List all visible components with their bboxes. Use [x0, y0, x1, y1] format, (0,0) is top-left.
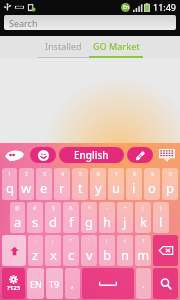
staticText: 8 — [133, 171, 136, 178]
button[interactable]: 1 — [2, 168, 17, 200]
button[interactable]: @ — [10, 202, 25, 233]
button[interactable]: Theme — [127, 147, 153, 163]
button[interactable]: ; — [45, 235, 61, 266]
staticText: x — [50, 246, 57, 264]
button[interactable]: 6 — [90, 168, 106, 200]
button[interactable]: # — [27, 202, 43, 233]
button[interactable]: * — [81, 202, 97, 233]
staticText: w — [21, 179, 32, 197]
staticText: 11:49 — [153, 1, 177, 13]
staticText: q — [6, 179, 14, 197]
button[interactable]: T9 — [46, 268, 63, 299]
button[interactable]: . — [136, 268, 151, 299]
staticText: s — [32, 213, 39, 231]
staticText: t — [78, 179, 83, 197]
staticText: u — [112, 179, 121, 197]
button[interactable]: 2 — [19, 168, 34, 200]
staticText: Search — [9, 17, 38, 29]
button[interactable]: - — [99, 202, 115, 233]
staticText: z — [32, 246, 39, 264]
staticText: En — [123, 4, 129, 11]
other: Backspace — [153, 235, 178, 266]
staticText: $ — [52, 205, 55, 212]
staticText: 5 — [79, 171, 82, 178]
button[interactable]: GO Market — [89, 36, 144, 56]
button[interactable]: Shift — [2, 235, 26, 266]
staticText: * — [88, 205, 91, 212]
button[interactable]: 7 — [108, 168, 124, 200]
staticText: - — [106, 205, 108, 212]
button[interactable]: : — [28, 235, 43, 266]
button[interactable]: ? — [135, 235, 151, 266]
button[interactable]: & — [63, 202, 79, 233]
button[interactable]: $ — [45, 202, 61, 233]
button[interactable]: ' — [81, 235, 97, 266]
button[interactable]: Backspace — [153, 235, 178, 266]
button[interactable]: Emoji — [30, 147, 56, 163]
button[interactable]: " — [63, 235, 79, 266]
staticText: English — [74, 148, 109, 162]
staticText: ' — [88, 238, 90, 245]
button[interactable]: Hide keyboard — [157, 146, 177, 164]
staticText: b — [103, 246, 111, 264]
staticText: , — [71, 278, 74, 290]
staticText: GO Market — [93, 40, 140, 52]
staticText: + — [124, 205, 127, 212]
button[interactable]: EN — [27, 268, 44, 299]
button[interactable]: 5 — [72, 168, 88, 200]
staticText: m — [137, 246, 150, 264]
staticText: & — [69, 205, 73, 212]
staticText: e — [40, 179, 48, 197]
button[interactable]: Space — [82, 268, 134, 299]
staticText: ; — [52, 238, 54, 245]
button[interactable]: ! — [99, 235, 115, 266]
staticText: @ — [15, 205, 20, 212]
staticText: d — [49, 213, 57, 231]
other: Space — [82, 268, 134, 299]
staticText: y — [95, 179, 102, 197]
button[interactable]: ( — [135, 202, 151, 233]
other: Symbols and settings — [2, 268, 25, 299]
button[interactable]: , — [65, 268, 80, 299]
staticText: Installed — [45, 40, 82, 52]
other: Shift — [2, 235, 26, 266]
staticText: o — [148, 179, 156, 197]
staticText: l — [159, 213, 163, 231]
button[interactable]: 8 — [126, 168, 142, 200]
button[interactable]: + — [117, 202, 133, 233]
staticText: v — [86, 246, 93, 264]
staticText: h — [103, 213, 112, 231]
staticText: ! — [106, 238, 108, 245]
button[interactable]: Search — [4, 15, 176, 30]
staticText: 2 — [25, 171, 28, 178]
staticText: 7 — [115, 171, 118, 178]
staticText: 4 — [61, 171, 64, 178]
staticText: ( — [142, 205, 144, 212]
staticText: j — [123, 213, 127, 231]
staticText: . — [142, 278, 145, 290]
button[interactable]: 0 — [162, 168, 178, 200]
staticText: 6 — [97, 171, 100, 178]
staticText: 3 — [43, 171, 46, 178]
button[interactable]: Symbols and settings — [2, 268, 25, 299]
button[interactable]: 4 — [54, 168, 70, 200]
staticText: a — [14, 213, 22, 231]
button[interactable]: 9 — [144, 168, 160, 200]
button[interactable]: / — [117, 235, 133, 266]
button[interactable]: English — [59, 147, 124, 163]
staticText: ) — [160, 205, 162, 212]
staticText: n — [121, 246, 130, 264]
staticText: T9 — [49, 278, 60, 290]
button[interactable]: 3 — [36, 168, 52, 200]
button[interactable]: GO Keyboard — [3, 146, 27, 164]
staticText: g — [85, 213, 93, 231]
staticText: k — [140, 213, 147, 231]
staticText: f — [69, 213, 74, 231]
staticText: p — [166, 179, 174, 197]
button[interactable]: Installed — [37, 36, 89, 56]
button[interactable]: Search — [153, 268, 178, 299]
button[interactable]: ) — [153, 202, 169, 233]
staticText: c — [68, 246, 75, 264]
staticText: i — [132, 179, 136, 197]
staticText: ? — [142, 238, 145, 245]
